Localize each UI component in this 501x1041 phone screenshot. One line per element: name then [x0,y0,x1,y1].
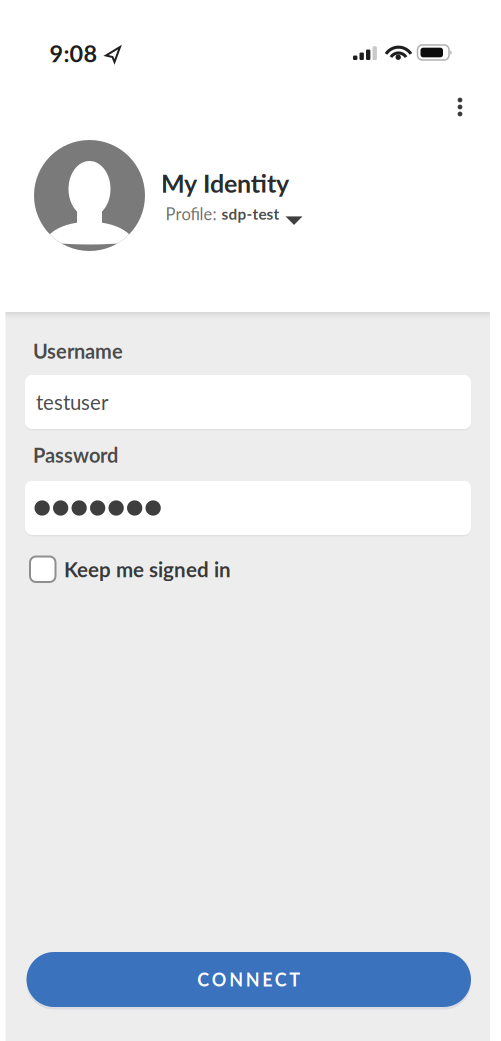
button[interactable]: More options [445,92,475,122]
button[interactable]: Keep me signed in [30,556,231,582]
staticText: Username [33,339,123,363]
staticText: Password [33,443,118,467]
staticText: Profile: [165,204,216,224]
button[interactable]: Password [25,481,471,535]
button[interactable]: Username [25,375,471,429]
staticText: CONNECT [197,969,300,990]
button[interactable]: Profile: [165,204,302,224]
staticText: My Identity [161,168,289,198]
staticText: Keep me signed in [64,557,231,581]
staticText: testuser [36,390,108,414]
button[interactable]: CONNECT [26,952,471,1007]
staticText: sdp-test [221,205,279,223]
staticText: 9:08 [49,39,97,67]
